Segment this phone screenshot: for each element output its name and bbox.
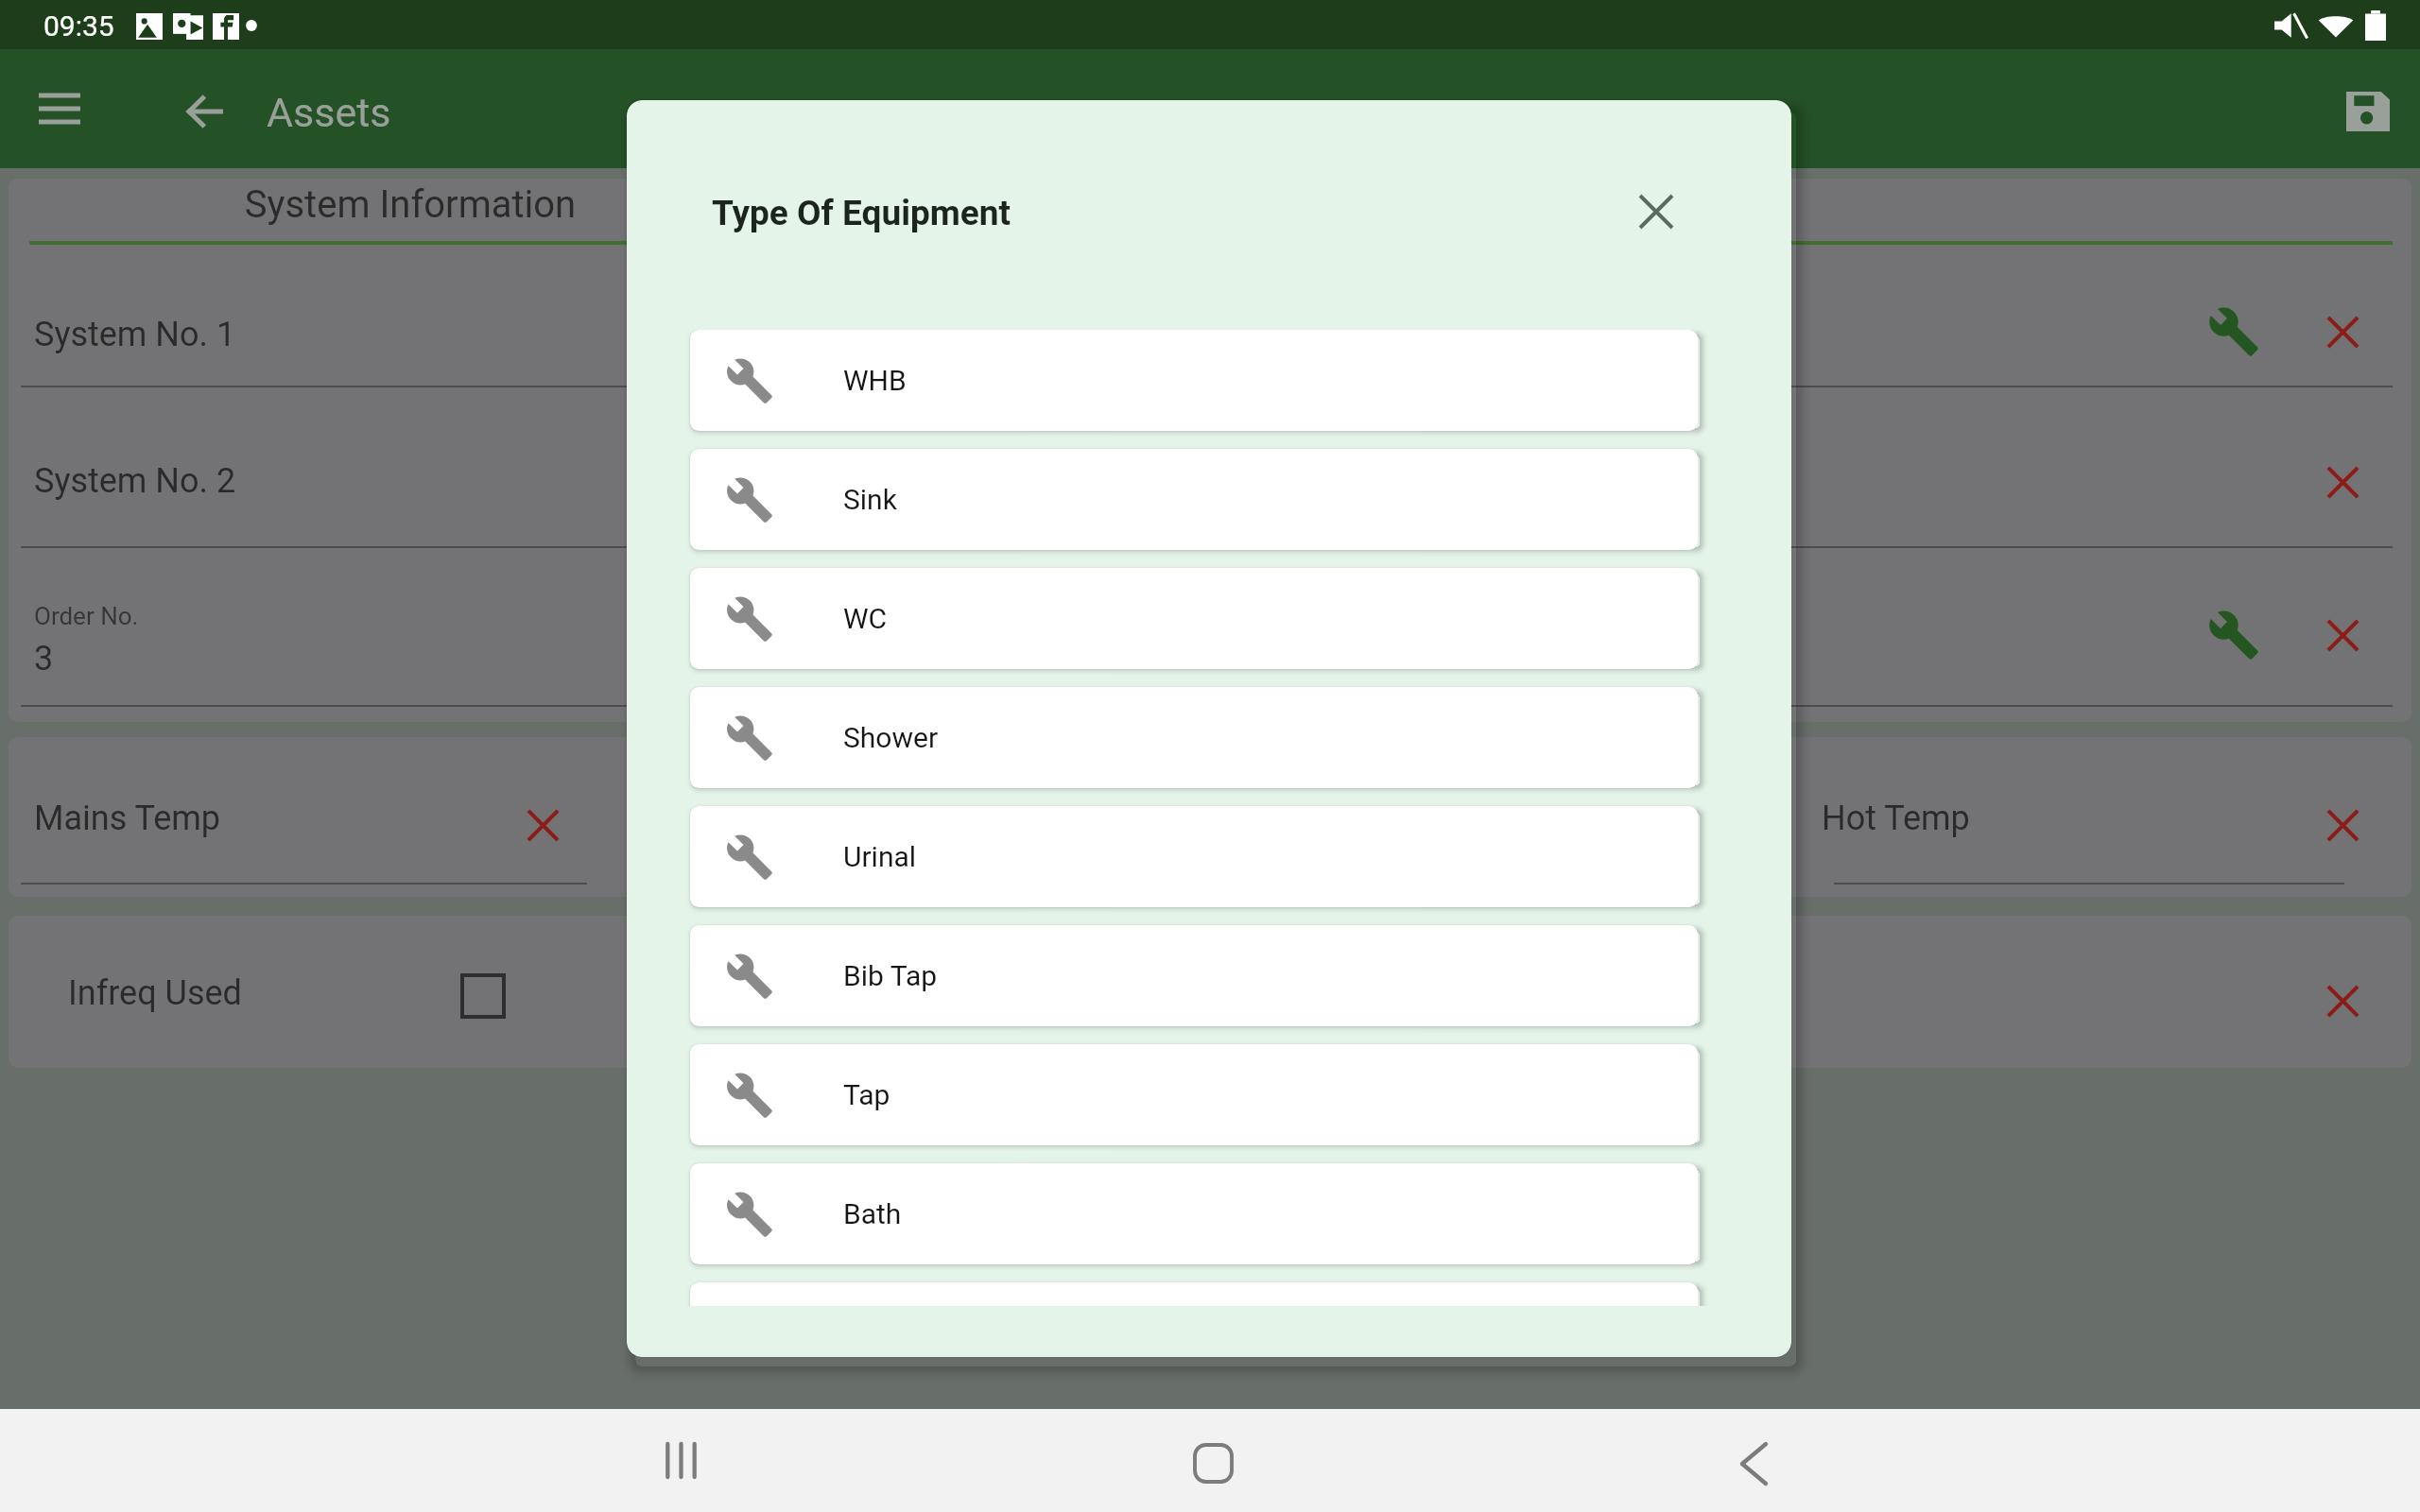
staticText: Infreq Used [68, 973, 242, 1013]
button[interactable]: Clear [2296, 589, 2389, 681]
staticText: Order No. [34, 602, 139, 630]
staticText: Hot Temp [1822, 799, 1970, 838]
button[interactable]: Bib Tap [690, 925, 1698, 1026]
button[interactable]: Clear [2296, 436, 2389, 528]
staticText: WC [843, 602, 888, 635]
button[interactable]: Infreq Used checkbox [437, 950, 529, 1042]
staticText: Shower [843, 721, 939, 754]
button[interactable]: Clear [2296, 954, 2389, 1047]
staticText: Type Of Equipment [712, 193, 1011, 233]
button[interactable]: WC [690, 568, 1698, 669]
button[interactable]: Sink [690, 449, 1698, 550]
button[interactable]: Edit [2187, 285, 2280, 378]
button[interactable]: Recent apps [629, 1413, 733, 1507]
button[interactable]: Clear [2296, 285, 2389, 378]
staticText: Sink [843, 483, 897, 516]
button[interactable]: Bath [690, 1163, 1698, 1264]
button[interactable]: Edit [2187, 589, 2280, 681]
button[interactable]: Home [1161, 1416, 1265, 1510]
staticText: WHB [843, 364, 907, 397]
staticText: System No. 2 [34, 461, 236, 501]
staticText: 09:35 [43, 9, 114, 43]
button[interactable]: Clear [2296, 779, 2389, 871]
staticText: System No. 1 [34, 315, 236, 354]
staticText: Assets [267, 89, 391, 136]
staticText: Tap [843, 1078, 890, 1111]
staticText: Mains Temp [34, 799, 221, 838]
staticText: Bath [843, 1197, 902, 1230]
button[interactable]: Urinal [690, 806, 1698, 907]
button[interactable]: Back [168, 75, 242, 148]
button[interactable]: Save [2331, 75, 2405, 148]
button[interactable]: WHB [690, 330, 1698, 431]
button[interactable]: Close [1618, 174, 1694, 249]
button[interactable]: Back [1702, 1417, 1806, 1511]
staticText: 3 [34, 639, 54, 679]
staticText: Bib Tap [843, 959, 938, 992]
button[interactable]: Menu [21, 73, 98, 145]
staticText: Urinal [843, 840, 917, 873]
staticText: System Information [9, 182, 812, 227]
button[interactable]: Shower [690, 687, 1698, 788]
button[interactable]: Clear [496, 779, 589, 871]
button[interactable] [690, 1282, 1698, 1306]
button[interactable]: Tap [690, 1044, 1698, 1145]
